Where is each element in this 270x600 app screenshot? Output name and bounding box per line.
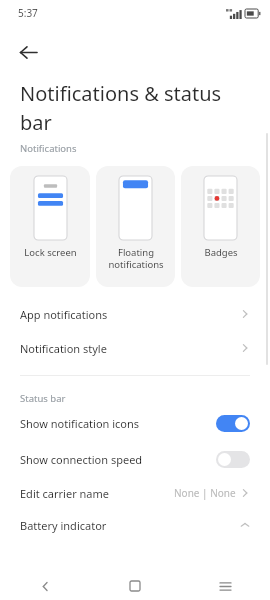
staticText: Badges	[204, 246, 238, 259]
button[interactable]: Badges	[181, 166, 260, 287]
staticText: None | None	[174, 486, 236, 500]
button[interactable]: Back	[0, 572, 90, 600]
button[interactable]: Battery indicator	[0, 509, 270, 541]
staticText: Notification style	[20, 341, 240, 356]
staticText: Show notification icons	[20, 416, 216, 431]
button[interactable]: Back	[8, 32, 48, 72]
button[interactable]: Lock screen	[10, 166, 90, 287]
staticText: Floating notifications	[108, 246, 164, 271]
staticText: Status bar	[20, 392, 66, 405]
staticText: App notifications	[20, 307, 240, 322]
staticText: Show connection speed	[20, 452, 216, 467]
button[interactable]: Edit carrier name	[0, 477, 270, 509]
staticText: Battery indicator	[20, 518, 240, 533]
staticText: Notifications & status	[20, 80, 222, 107]
button[interactable]: Recent apps	[180, 572, 270, 600]
button[interactable]: Show connection speed	[0, 441, 270, 477]
button[interactable]: App notifications	[0, 297, 270, 331]
button[interactable]: Home	[90, 572, 180, 600]
button[interactable]: Floating notifications	[96, 166, 175, 287]
staticText: 5:37	[18, 6, 38, 20]
button[interactable]: Show notification icons	[0, 405, 270, 441]
staticText: Lock screen	[24, 246, 77, 259]
staticText: Edit carrier name	[20, 486, 174, 501]
button[interactable]: Notification style	[0, 331, 270, 365]
staticText: bar	[20, 109, 52, 136]
staticText: Notifications	[20, 142, 77, 155]
